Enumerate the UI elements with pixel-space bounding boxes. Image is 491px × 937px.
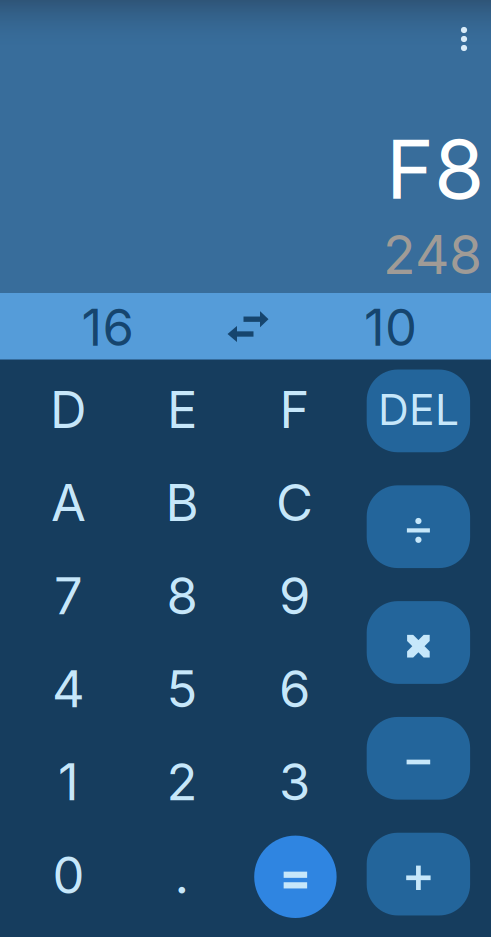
- button[interactable]: F: [238, 363, 351, 456]
- staticText: C: [276, 472, 313, 533]
- button[interactable]: 5: [125, 642, 238, 735]
- staticText: DEL: [378, 384, 459, 435]
- button[interactable]: D: [12, 363, 125, 456]
- button[interactable]: Subtract: [367, 717, 470, 800]
- button[interactable]: E: [125, 363, 238, 456]
- staticText: 4: [52, 658, 85, 719]
- staticText: 2: [166, 751, 197, 812]
- staticText: E: [167, 379, 197, 440]
- staticText: F: [279, 379, 309, 440]
- staticText: .: [174, 844, 189, 906]
- staticText: B: [165, 472, 198, 533]
- button[interactable]: 2: [125, 735, 238, 828]
- button[interactable]: 3: [238, 735, 351, 828]
- button[interactable]: Divide: [367, 485, 470, 568]
- button[interactable]: .: [125, 828, 238, 921]
- button[interactable]: 16: [10, 294, 206, 361]
- staticText: 7: [54, 565, 83, 626]
- staticText: 5: [166, 658, 197, 719]
- button[interactable]: 6: [238, 642, 351, 735]
- button[interactable]: Equals: [254, 836, 337, 918]
- staticText: 9: [279, 565, 310, 626]
- button[interactable]: 0: [12, 828, 125, 921]
- button[interactable]: 1: [12, 735, 125, 828]
- button[interactable]: C: [238, 456, 351, 549]
- button[interactable]: Swap number bases: [208, 297, 288, 357]
- button[interactable]: 4: [12, 642, 125, 735]
- staticText: 6: [279, 658, 310, 719]
- staticText: 1: [58, 751, 79, 812]
- staticText: 8: [166, 565, 197, 626]
- button[interactable]: Delete: [367, 369, 470, 452]
- button[interactable]: 10: [293, 294, 489, 361]
- button[interactable]: More options: [441, 15, 487, 63]
- button[interactable]: Multiply: [367, 601, 470, 684]
- button[interactable]: Add: [367, 833, 470, 915]
- button[interactable]: 8: [125, 549, 238, 642]
- staticText: F8: [386, 120, 484, 218]
- button[interactable]: 9: [238, 549, 351, 642]
- button[interactable]: 7: [12, 549, 125, 642]
- button[interactable]: A: [12, 456, 125, 549]
- staticText: 10: [364, 297, 417, 358]
- staticText: A: [51, 472, 86, 533]
- button[interactable]: B: [125, 456, 238, 549]
- staticText: D: [50, 379, 87, 440]
- staticText: 0: [52, 844, 84, 906]
- staticText: 16: [82, 297, 134, 358]
- staticText: 3: [279, 751, 310, 812]
- staticText: 248: [383, 222, 482, 287]
